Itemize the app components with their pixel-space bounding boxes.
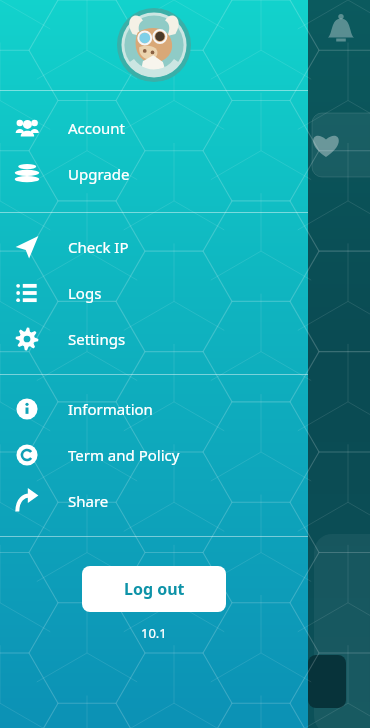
button[interactable]: Settings [0,316,308,362]
staticText: Upgrade [68,164,130,184]
staticText: 10.1 [141,624,167,642]
button[interactable]: Upgrade [0,151,308,197]
staticText: Check IP [68,237,129,257]
staticText: Logs [68,283,102,303]
button[interactable]: Term and Policy [0,432,308,478]
button[interactable]: Information [0,386,308,432]
staticText: Share [68,491,109,511]
staticText: Log out [124,578,185,600]
staticText: Account [68,118,126,138]
button[interactable]: Account [0,105,308,151]
button[interactable]: Share [0,478,308,524]
button[interactable]: Logs [0,270,308,316]
button[interactable]: Check IP [0,224,308,270]
staticText: Term and Policy [68,445,180,465]
button[interactable]: Log out [82,566,226,612]
staticText: Information [68,399,153,419]
staticText: Settings [68,329,126,349]
